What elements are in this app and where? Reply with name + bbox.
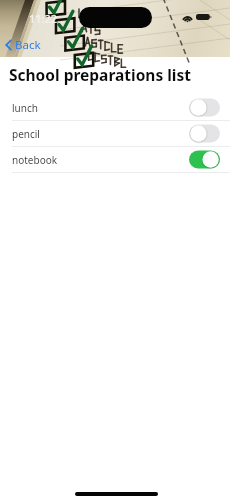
button[interactable]: Back <box>4 36 42 54</box>
staticText: lunch <box>12 101 38 115</box>
button[interactable]: Disabled <box>189 98 220 117</box>
staticText: Back <box>15 37 41 53</box>
staticText: notebook <box>12 153 58 167</box>
button[interactable]: Disabled <box>189 124 220 143</box>
staticText: School preparations list <box>9 64 191 85</box>
button[interactable]: Enabled <box>189 150 220 169</box>
button[interactable]: notebook <box>0 147 230 173</box>
button[interactable]: lunch <box>0 95 230 121</box>
staticText: pencil <box>12 127 40 141</box>
staticText: 11:22 <box>29 11 58 26</box>
button[interactable]: pencil <box>0 121 230 147</box>
